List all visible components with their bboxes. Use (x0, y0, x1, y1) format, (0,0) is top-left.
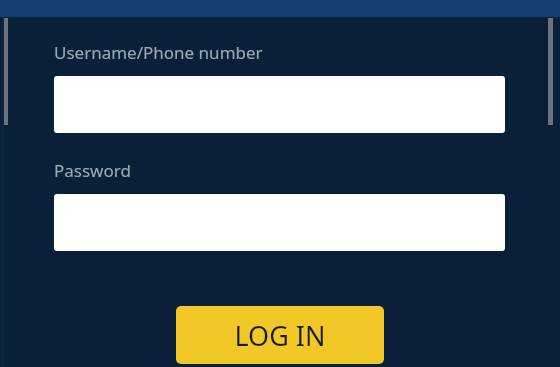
staticText: LOG IN (234, 317, 326, 354)
button[interactable]: Password input (54, 194, 505, 251)
staticText: Password (54, 159, 131, 182)
button[interactable]: Username or phone number input (54, 76, 505, 133)
button[interactable]: LOG IN (176, 306, 384, 364)
staticText: Username/Phone number (54, 41, 263, 64)
